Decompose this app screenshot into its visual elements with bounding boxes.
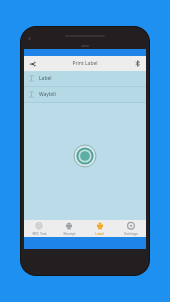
staticText: Label xyxy=(95,231,104,236)
button[interactable]: Connect xyxy=(26,57,39,70)
staticText: NFC Test xyxy=(32,231,47,236)
button[interactable]: Print xyxy=(74,145,96,167)
staticText: Label xyxy=(39,75,52,82)
button[interactable]: Settings xyxy=(115,220,146,237)
button[interactable]: Label xyxy=(84,220,115,237)
staticText: Waybill xyxy=(39,91,56,98)
staticText: Receipt xyxy=(63,231,76,236)
staticText: Print Label xyxy=(72,60,98,67)
button[interactable]: Bluetooth xyxy=(131,57,144,70)
button[interactable]: Label xyxy=(24,71,146,86)
button[interactable]: Receipt xyxy=(54,220,84,237)
button[interactable]: NFC Test xyxy=(24,220,54,237)
staticText: Settings xyxy=(124,231,138,236)
button[interactable]: Waybill xyxy=(24,87,146,102)
